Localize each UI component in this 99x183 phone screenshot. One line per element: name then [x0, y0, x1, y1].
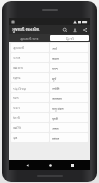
staticText: ગુજરાતી શબ્દકોશ [12, 26, 40, 33]
button[interactable]: Share [81, 26, 88, 33]
button[interactable]: Search [61, 26, 68, 33]
staticText: ધરતી [13, 116, 20, 119]
button[interactable]: હિન્દી [50, 35, 89, 41]
button[interactable]: અગ્નિ [11, 123, 88, 132]
staticText: जलधारा [52, 96, 62, 100]
button[interactable]: Back [23, 161, 31, 169]
button[interactable]: ધરતી [11, 113, 88, 122]
staticText: ગુજરાતી શબ્દ [20, 36, 39, 41]
staticText: अर्थ [52, 46, 57, 50]
staticText: સૂરજ [13, 76, 21, 79]
staticText: पृथ्वी [52, 116, 58, 120]
staticText: ज्योति [52, 86, 60, 90]
staticText: કમળ [13, 56, 21, 59]
staticText: ગુજરાતી [13, 46, 25, 49]
staticText: અગ્નિ [13, 126, 22, 129]
button[interactable]: આકાશ [11, 63, 88, 72]
staticText: गगन [52, 66, 58, 70]
staticText: वायु मंडल [52, 106, 64, 110]
staticText: अनल [52, 126, 59, 130]
staticText: सूर्य [52, 76, 57, 80]
staticText: तरुवर [52, 136, 60, 140]
button[interactable]: જળ [11, 93, 88, 102]
staticText: ચંદ્ર કિરણ [13, 86, 27, 90]
staticText: આકાશ [13, 66, 23, 69]
button[interactable]: સૂરજ [11, 73, 88, 82]
staticText: પવન [13, 106, 20, 109]
staticText: વૃક્ષ [13, 136, 18, 139]
button[interactable]: ગુજરાતી શબ્દ [9, 34, 49, 42]
button[interactable]: પવન [11, 103, 88, 112]
button[interactable]: Recent apps [68, 161, 76, 169]
button[interactable]: વૃક્ષ [11, 133, 88, 142]
button[interactable]: ગુજરાતી [11, 43, 88, 52]
button[interactable]: ચંદ્ર કિરણ [11, 83, 88, 92]
staticText: હિન્દી [66, 37, 74, 40]
staticText: कमल [52, 56, 59, 60]
button[interactable]: Download [71, 26, 78, 33]
staticText: જળ [13, 96, 19, 99]
button[interactable]: Home [46, 161, 54, 169]
button[interactable]: કમળ [11, 53, 88, 62]
